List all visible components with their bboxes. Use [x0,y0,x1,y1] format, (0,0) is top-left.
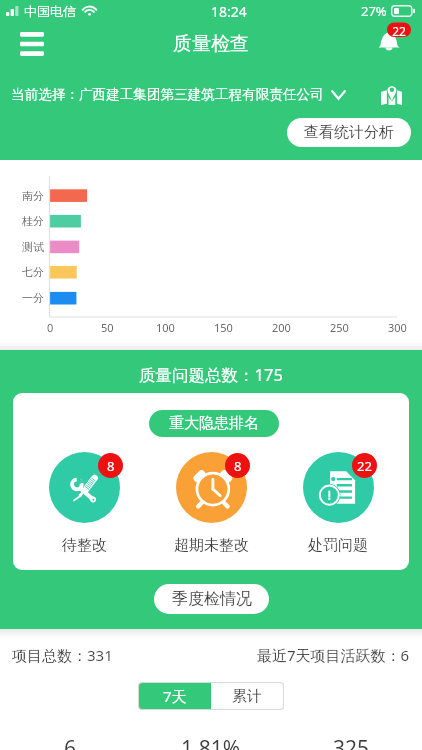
staticText: 325 [333,734,370,750]
staticText: 桂分 [22,214,44,228]
staticText: 累计 [232,687,262,706]
staticText: 超期未整改 [174,536,249,555]
staticText: 七分 [22,265,44,279]
button[interactable]: Map [375,81,407,107]
staticText: 0 [47,320,54,335]
staticText: 季度检情况 [172,589,252,609]
staticText: 南分 [22,189,44,203]
staticText: 7天 [163,686,187,706]
staticText: 一分 [22,291,44,305]
button[interactable]: 8 [36,451,132,555]
button[interactable]: 8 [163,451,259,555]
staticText: 测试 [22,240,44,254]
staticText: 质量问题总数：175 [0,363,422,386]
staticText: 最近7天项目活跃数：6 [257,645,410,665]
staticText: 22 [387,23,411,39]
button[interactable]: 7天 [139,683,211,709]
staticText: 250 [330,320,349,335]
button[interactable]: 22 [290,451,386,555]
button[interactable]: 当前选择：广西建工集团第三建筑工程有限责任公司 [11,86,346,103]
staticText: 18:24 [211,2,247,21]
staticText: 待整改 [62,536,107,555]
button[interactable]: 累计 [211,683,283,709]
staticText: 50 [101,320,114,335]
staticText: 中国电信 [24,3,76,19]
staticText: 22 [357,457,372,475]
button[interactable]: 重大隐患排名 [149,410,279,437]
staticText: 8 [234,457,242,475]
staticText: 重大隐患排名 [169,414,259,433]
staticText: 项目总数：331 [12,645,113,665]
button[interactable]: Notifications [374,20,418,56]
staticText: 27% [361,2,387,20]
staticText: 质量检查 [173,32,249,56]
staticText: 处罚问题 [308,536,368,555]
button[interactable]: 季度检情况 [154,584,269,614]
staticText: 300 [388,320,407,335]
button[interactable]: Menu [10,22,54,66]
staticText: 100 [156,320,175,335]
staticText: 8 [107,457,115,475]
button[interactable]: 查看统计分析 [287,118,411,147]
staticText: 6 [64,734,77,750]
staticText: 200 [272,320,291,335]
staticText: 150 [214,320,233,335]
staticText: 查看统计分析 [304,123,394,142]
staticText: 1.81% [181,734,241,750]
staticText: 当前选择：广西建工集团第三建筑工程有限责任公司 [11,86,324,103]
